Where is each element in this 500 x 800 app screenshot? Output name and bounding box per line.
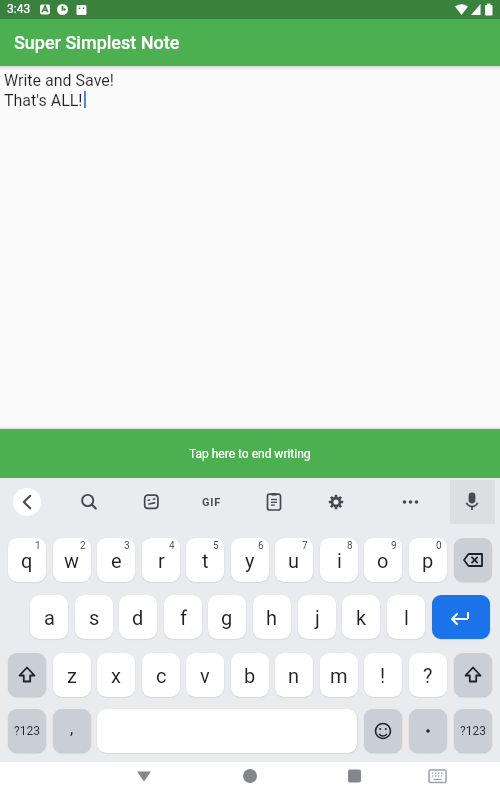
staticText: GIF — [202, 496, 222, 509]
button[interactable]: z — [53, 653, 91, 697]
button[interactable]: o — [364, 538, 402, 582]
button[interactable]: , — [53, 709, 91, 753]
button[interactable]: k — [342, 595, 380, 639]
staticText: Write and Save! That's ALL! — [4, 71, 114, 110]
button[interactable]: d — [119, 595, 157, 639]
staticText: b — [244, 664, 256, 687]
button[interactable] — [69, 482, 109, 522]
button[interactable]: ? — [409, 653, 447, 697]
staticText: q — [21, 549, 33, 572]
button[interactable] — [254, 482, 294, 522]
button[interactable]: v — [186, 653, 224, 697]
staticText: l — [404, 606, 409, 629]
button[interactable]: y — [231, 538, 269, 582]
staticText: y — [245, 549, 255, 572]
button[interactable] — [364, 709, 402, 753]
staticText: , — [70, 718, 74, 738]
staticText: k — [356, 606, 367, 629]
button[interactable]: ?123 — [454, 709, 492, 753]
button[interactable]: t — [186, 538, 224, 582]
staticText: Tap here to end writing — [189, 447, 311, 461]
button[interactable] — [335, 762, 373, 800]
button[interactable]: g — [208, 595, 246, 639]
button[interactable]: w — [53, 538, 91, 582]
staticText: ! — [380, 664, 386, 687]
staticText: 7 — [302, 540, 308, 552]
staticText: t — [202, 549, 209, 572]
button[interactable]: p — [409, 538, 447, 582]
button[interactable]: Super Simplest Note — [0, 19, 500, 66]
staticText: ?123 — [460, 724, 486, 738]
staticText: p — [422, 549, 434, 572]
staticText: u — [288, 549, 300, 572]
button[interactable]: a — [30, 595, 68, 639]
button[interactable]: x — [97, 653, 135, 697]
staticText: 3 — [124, 540, 130, 552]
button[interactable] — [432, 595, 490, 639]
button[interactable] — [192, 482, 232, 522]
button[interactable]: j — [298, 595, 336, 639]
button[interactable]: h — [253, 595, 291, 639]
button[interactable]: b — [231, 653, 269, 697]
button[interactable]: i — [320, 538, 358, 582]
staticText: 8 — [347, 540, 353, 552]
button[interactable]: ?123 — [8, 709, 46, 753]
button[interactable] — [452, 482, 492, 522]
staticText: 2 — [80, 540, 86, 552]
button[interactable]: e — [97, 538, 135, 582]
staticText: e — [111, 549, 122, 572]
button[interactable]: ! — [364, 653, 402, 697]
staticText: c — [156, 664, 167, 687]
button[interactable] — [390, 482, 430, 522]
staticText: j — [315, 606, 320, 629]
staticText: 0 — [436, 540, 442, 552]
staticText: r — [158, 549, 165, 572]
button[interactable]: f — [164, 595, 202, 639]
staticText: z — [67, 664, 77, 687]
button[interactable]: n — [275, 653, 313, 697]
button[interactable]: r — [142, 538, 180, 582]
button[interactable] — [454, 653, 492, 697]
staticText: 3:43 — [7, 2, 31, 16]
staticText: ?123 — [14, 724, 40, 738]
button[interactable] — [8, 653, 46, 697]
staticText: w — [64, 549, 80, 572]
staticText: n — [288, 664, 300, 687]
staticText: 1 — [35, 540, 41, 552]
staticText: h — [266, 606, 278, 629]
button[interactable]: u — [275, 538, 313, 582]
button[interactable] — [409, 709, 447, 753]
staticText: s — [89, 606, 100, 629]
button[interactable] — [125, 762, 163, 800]
button[interactable]: q — [8, 538, 46, 582]
button[interactable] — [454, 538, 492, 582]
staticText: 6 — [258, 540, 264, 552]
button[interactable] — [316, 482, 356, 522]
staticText: v — [200, 664, 210, 687]
button[interactable] — [231, 762, 269, 800]
staticText: x — [111, 664, 121, 687]
staticText: ? — [423, 664, 433, 687]
staticText: f — [180, 606, 187, 629]
staticText: Super Simplest Note — [14, 32, 180, 53]
button[interactable]: m — [320, 653, 358, 697]
button[interactable]: Tap here to end writing — [0, 429, 500, 478]
button[interactable]: c — [142, 653, 180, 697]
button[interactable]: l — [387, 595, 425, 639]
staticText: 9 — [391, 540, 397, 552]
button[interactable] — [418, 762, 456, 800]
button[interactable] — [13, 488, 41, 516]
staticText: 5 — [213, 540, 219, 552]
staticText: a — [44, 606, 55, 629]
button[interactable] — [131, 482, 171, 522]
staticText: 4 — [169, 540, 175, 552]
staticText: d — [132, 606, 144, 629]
staticText: m — [330, 664, 348, 687]
staticText: g — [221, 606, 233, 629]
staticText: o — [377, 549, 389, 572]
staticText: i — [337, 549, 342, 572]
button[interactable]: s — [75, 595, 113, 639]
